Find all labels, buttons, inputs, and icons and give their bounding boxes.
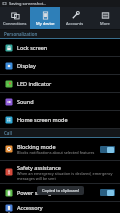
button[interactable]: Blocking mode xyxy=(0,138,120,161)
staticText: Saving screenshot... xyxy=(9,1,47,6)
button[interactable]: Accessory xyxy=(0,202,120,213)
staticText: Display xyxy=(17,62,36,69)
button[interactable]: On xyxy=(100,146,115,153)
staticText: Safety assistance xyxy=(17,164,61,171)
staticText: Lock screen xyxy=(17,44,48,51)
staticText: Accounts xyxy=(66,21,84,26)
button[interactable]: Accounts xyxy=(60,7,90,29)
staticText: Connections xyxy=(3,21,27,26)
staticText: Copied to clipboard xyxy=(42,188,79,193)
button[interactable]: Safety assistance xyxy=(0,161,120,184)
staticText: My device xyxy=(36,21,55,26)
staticText: Accessory xyxy=(17,204,43,211)
button[interactable]: Power saving mode xyxy=(0,184,120,202)
button[interactable]: LED indicator xyxy=(0,75,120,93)
button[interactable]: Home screen mode xyxy=(0,111,120,129)
staticText: Sound xyxy=(17,98,34,105)
staticText: More xyxy=(100,21,110,26)
staticText: Power saving mode xyxy=(17,189,68,196)
button[interactable]: Lock screen xyxy=(0,39,120,57)
button[interactable]: Connections xyxy=(0,7,30,29)
button[interactable]: More xyxy=(90,7,120,29)
staticText: Call xyxy=(4,130,12,136)
button[interactable]: On xyxy=(100,189,115,196)
staticText: Personalization xyxy=(4,31,38,37)
button[interactable]: Sound xyxy=(0,93,120,111)
staticText: Blocks notifications about selected feat… xyxy=(17,150,95,155)
staticText: Home screen mode xyxy=(17,116,68,123)
staticText: LED indicator xyxy=(17,80,52,87)
button[interactable]: My device xyxy=(30,7,60,29)
button[interactable]: Display xyxy=(0,57,120,75)
staticText: Blocking mode xyxy=(17,143,56,150)
staticText: When an emergency situation is declared,… xyxy=(17,171,115,181)
